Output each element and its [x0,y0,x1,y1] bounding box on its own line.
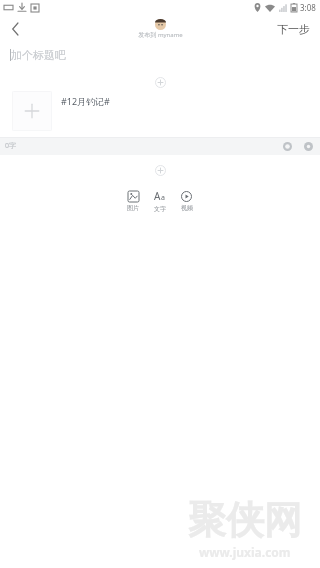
staticText: 0字 [5,141,17,151]
staticText: 图片 [127,204,139,212]
button[interactable]: 视频 [173,183,200,219]
button[interactable]: 加个标题吧 [0,42,320,67]
button[interactable]: Add block [150,73,170,91]
button[interactable]: Back [0,15,30,42]
button[interactable]: 发布到 myname [138,19,183,39]
staticText: www.juxia.com [199,544,291,560]
button[interactable]: A [146,183,173,219]
staticText: 视频 [181,204,193,212]
button[interactable]: Settings [301,139,315,153]
staticText: 下一步 [277,22,310,36]
button[interactable]: 下一步 [267,18,320,40]
staticText: #12月钓记# [61,95,110,107]
staticText: 文字 [154,205,166,213]
staticText: 聚侠网 [188,496,302,544]
staticText: A [154,189,161,203]
button[interactable]: Add image [12,91,52,131]
staticText: 3:08 [300,2,316,13]
staticText: 发布到 myname [138,31,183,39]
staticText: 加个标题吧 [11,48,66,62]
button[interactable]: Keyboard [280,139,294,153]
staticText: a [161,193,165,203]
button[interactable]: 图片 [120,183,146,219]
button[interactable]: Add block [150,161,170,179]
